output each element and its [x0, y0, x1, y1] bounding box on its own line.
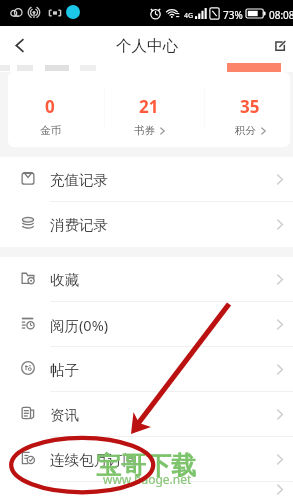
staticText: 0 [45, 95, 55, 118]
staticText: 08:08 [269, 8, 293, 22]
staticText: www.baoge.net [103, 471, 192, 487]
staticText: 连续包月订阅 [50, 451, 137, 469]
button[interactable]: 资讯 [0, 392, 293, 437]
staticText: 宝哥下载 [96, 450, 196, 481]
button[interactable]: 0 [8, 95, 92, 143]
button[interactable]: Back [1, 27, 37, 63]
staticText: 4G [184, 11, 194, 21]
button[interactable] [0, 482, 293, 496]
staticText: 充值记录 [50, 171, 108, 189]
button[interactable]: 35 [208, 95, 292, 143]
button[interactable]: 21 [107, 95, 191, 143]
button[interactable]: 阅历(0%) [0, 302, 293, 347]
button[interactable]: Edit [262, 28, 293, 64]
staticText: 金币 [40, 124, 61, 137]
staticText: 帖子 [50, 361, 79, 379]
staticText: 个人中心 [116, 36, 178, 56]
staticText: 73% [223, 8, 243, 22]
staticText: 阅历(0%) [50, 315, 109, 335]
staticText: 积分 [235, 124, 256, 137]
button[interactable]: 消费记录 [0, 202, 293, 247]
staticText: 书券 [134, 124, 155, 137]
staticText: 收藏 [50, 271, 79, 289]
button[interactable]: 连续包月订阅 [0, 437, 293, 482]
staticText: 消费记录 [50, 216, 108, 234]
button[interactable]: 帖子 [0, 347, 293, 392]
staticText: 资讯 [50, 406, 79, 424]
button[interactable]: 收藏 [0, 257, 293, 302]
staticText: 35 [240, 95, 260, 118]
staticText: 21 [139, 95, 159, 118]
button[interactable]: 充值记录 [0, 157, 293, 202]
